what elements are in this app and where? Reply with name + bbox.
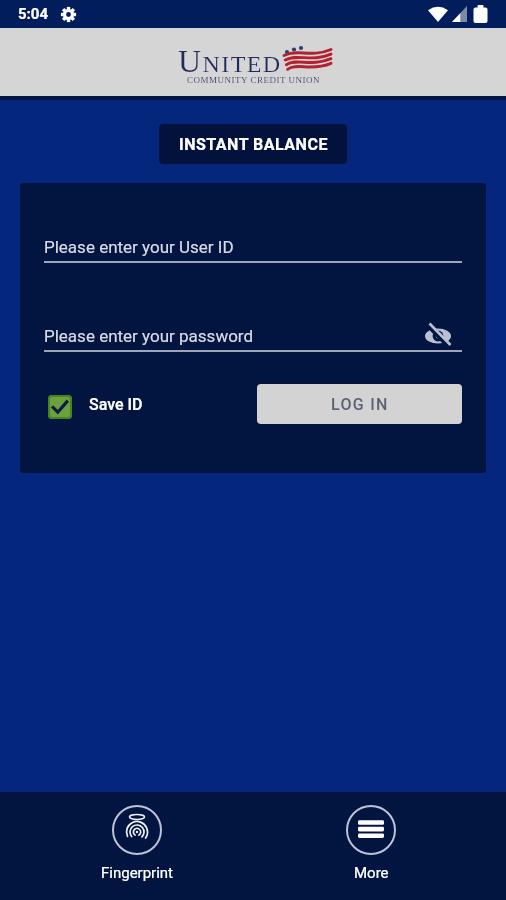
staticText: Please enter your User ID xyxy=(44,237,234,257)
staticText: INSTANT BALANCE xyxy=(179,135,328,154)
button[interactable]: More xyxy=(316,805,426,900)
button[interactable]: Fingerprint xyxy=(82,805,192,900)
staticText: Save ID xyxy=(89,395,143,414)
staticText: Please enter your password xyxy=(44,326,254,346)
staticText: UNITED xyxy=(178,43,282,73)
button[interactable]: INSTANT BALANCE xyxy=(159,124,347,164)
staticText: More xyxy=(354,864,389,882)
button[interactable]: LOG IN xyxy=(257,384,462,424)
staticText: LOG IN xyxy=(331,395,389,414)
button[interactable] xyxy=(424,324,452,348)
staticText: 5:04 xyxy=(18,5,49,23)
staticText: Fingerprint xyxy=(101,864,174,882)
staticText: COMMUNITY CREDIT UNION xyxy=(187,75,320,85)
button[interactable] xyxy=(48,395,72,419)
